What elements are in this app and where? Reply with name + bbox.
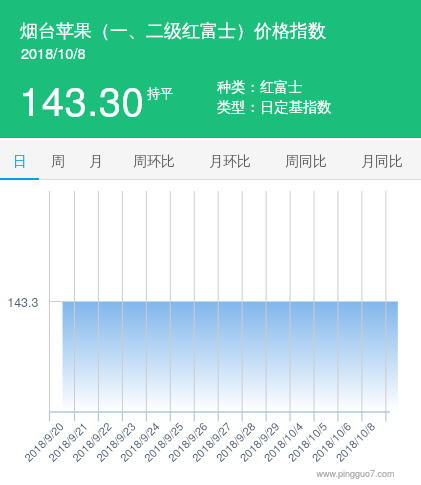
- staticText: 周: [51, 153, 65, 171]
- staticText: 类型：日定基指数: [217, 98, 332, 116]
- staticText: 143.30: [19, 70, 145, 127]
- button[interactable]: 周: [39, 140, 77, 180]
- staticText: 周环比: [133, 153, 175, 171]
- button[interactable]: 月同比: [344, 140, 420, 180]
- staticText: 烟台苹果（一、二级红富士）价格指数: [20, 20, 326, 43]
- staticText: 月: [89, 153, 103, 171]
- staticText: 月同比: [361, 153, 403, 171]
- staticText: 2018/10/8: [21, 42, 86, 63]
- staticText: 持平: [147, 85, 173, 101]
- button[interactable]: 周同比: [268, 140, 344, 180]
- button[interactable]: 日: [0, 140, 39, 180]
- staticText: 种类：红富士: [217, 78, 303, 96]
- staticText: 月环比: [209, 153, 251, 171]
- button[interactable]: 月: [77, 140, 115, 180]
- staticText: 周同比: [285, 153, 327, 171]
- button[interactable]: 月环比: [192, 140, 268, 180]
- button[interactable]: 周环比: [115, 140, 192, 180]
- staticText: 日: [13, 153, 27, 171]
